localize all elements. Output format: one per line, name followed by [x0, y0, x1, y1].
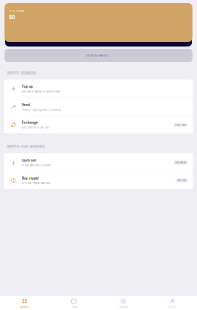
- staticText: Cash out: [22, 158, 36, 162]
- staticText: Profile: [169, 306, 176, 308]
- staticText: CRYPTO SERVICES: [7, 71, 36, 75]
- staticText: Total balance: [9, 9, 24, 12]
- staticText: History: [119, 306, 127, 308]
- button[interactable]: Dashboard: [0, 296, 49, 310]
- staticText: Exchange: [22, 121, 38, 125]
- staticText: Low fees: [177, 179, 186, 182]
- button[interactable]: Exchange: [4, 116, 193, 133]
- staticText: your wallet address to receive money: [22, 90, 60, 93]
- button[interactable]: Card: [49, 296, 98, 310]
- staticText: Dashboard: [20, 306, 29, 308]
- staticText: Card: [71, 306, 76, 308]
- button[interactable]: Profile: [148, 296, 197, 310]
- button[interactable]: Cash out: [4, 153, 193, 172]
- staticText: Show all wallets: [86, 54, 108, 57]
- button[interactable]: Top up: [4, 80, 193, 98]
- staticText: Send: [22, 103, 30, 107]
- staticText: Best rates: [175, 123, 186, 126]
- staticText: your crypto with low fees: [22, 126, 49, 129]
- button[interactable]: Show all wallets: [0, 49, 197, 62]
- staticText: with your regular bank card: [22, 182, 50, 185]
- button[interactable]: History: [98, 296, 148, 310]
- staticText: Buy crypto: [22, 176, 39, 180]
- staticText: $0: [9, 14, 15, 20]
- staticText: Top up: [22, 85, 33, 89]
- button[interactable]: Buy crypto: [4, 172, 193, 189]
- staticText: money at lightning speed to an address: [22, 108, 61, 111]
- staticText: CRYPTO-FIAT SERVICES: [7, 145, 45, 149]
- staticText: ⌄: [109, 54, 111, 57]
- staticText: to your bank card in minutes: [22, 164, 51, 167]
- staticText: Worldwide: [175, 161, 186, 164]
- button[interactable]: Send: [4, 98, 193, 116]
